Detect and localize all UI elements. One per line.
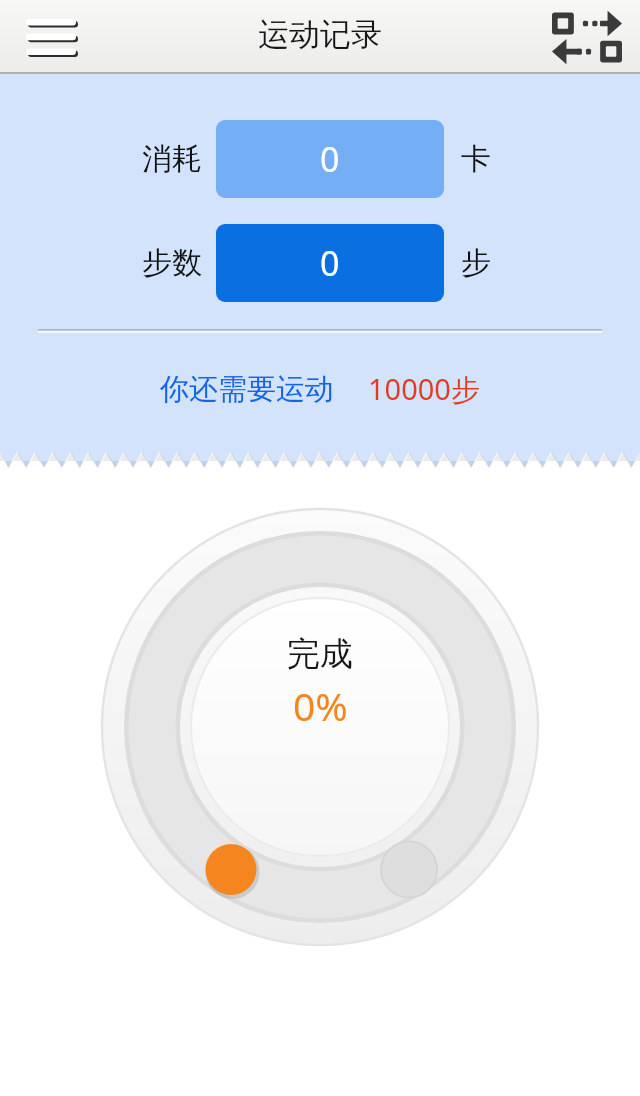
staticText: 0%	[293, 679, 348, 732]
staticText: 0	[320, 240, 340, 286]
staticText: 卡	[461, 140, 491, 178]
staticText: 0	[320, 136, 340, 182]
button[interactable]: Menu	[16, 8, 88, 66]
staticText: 步数	[142, 244, 202, 282]
staticText: 10000步	[368, 369, 480, 409]
staticText: 完成	[287, 633, 353, 675]
button[interactable]: 0	[216, 224, 444, 302]
button[interactable]: Sync data	[546, 5, 628, 69]
staticText: 你还需要运动	[160, 371, 334, 408]
staticText: 步	[461, 244, 491, 282]
staticText: 运动记录	[258, 15, 382, 54]
button[interactable]: 0	[216, 120, 444, 198]
staticText: 消耗	[142, 140, 202, 178]
